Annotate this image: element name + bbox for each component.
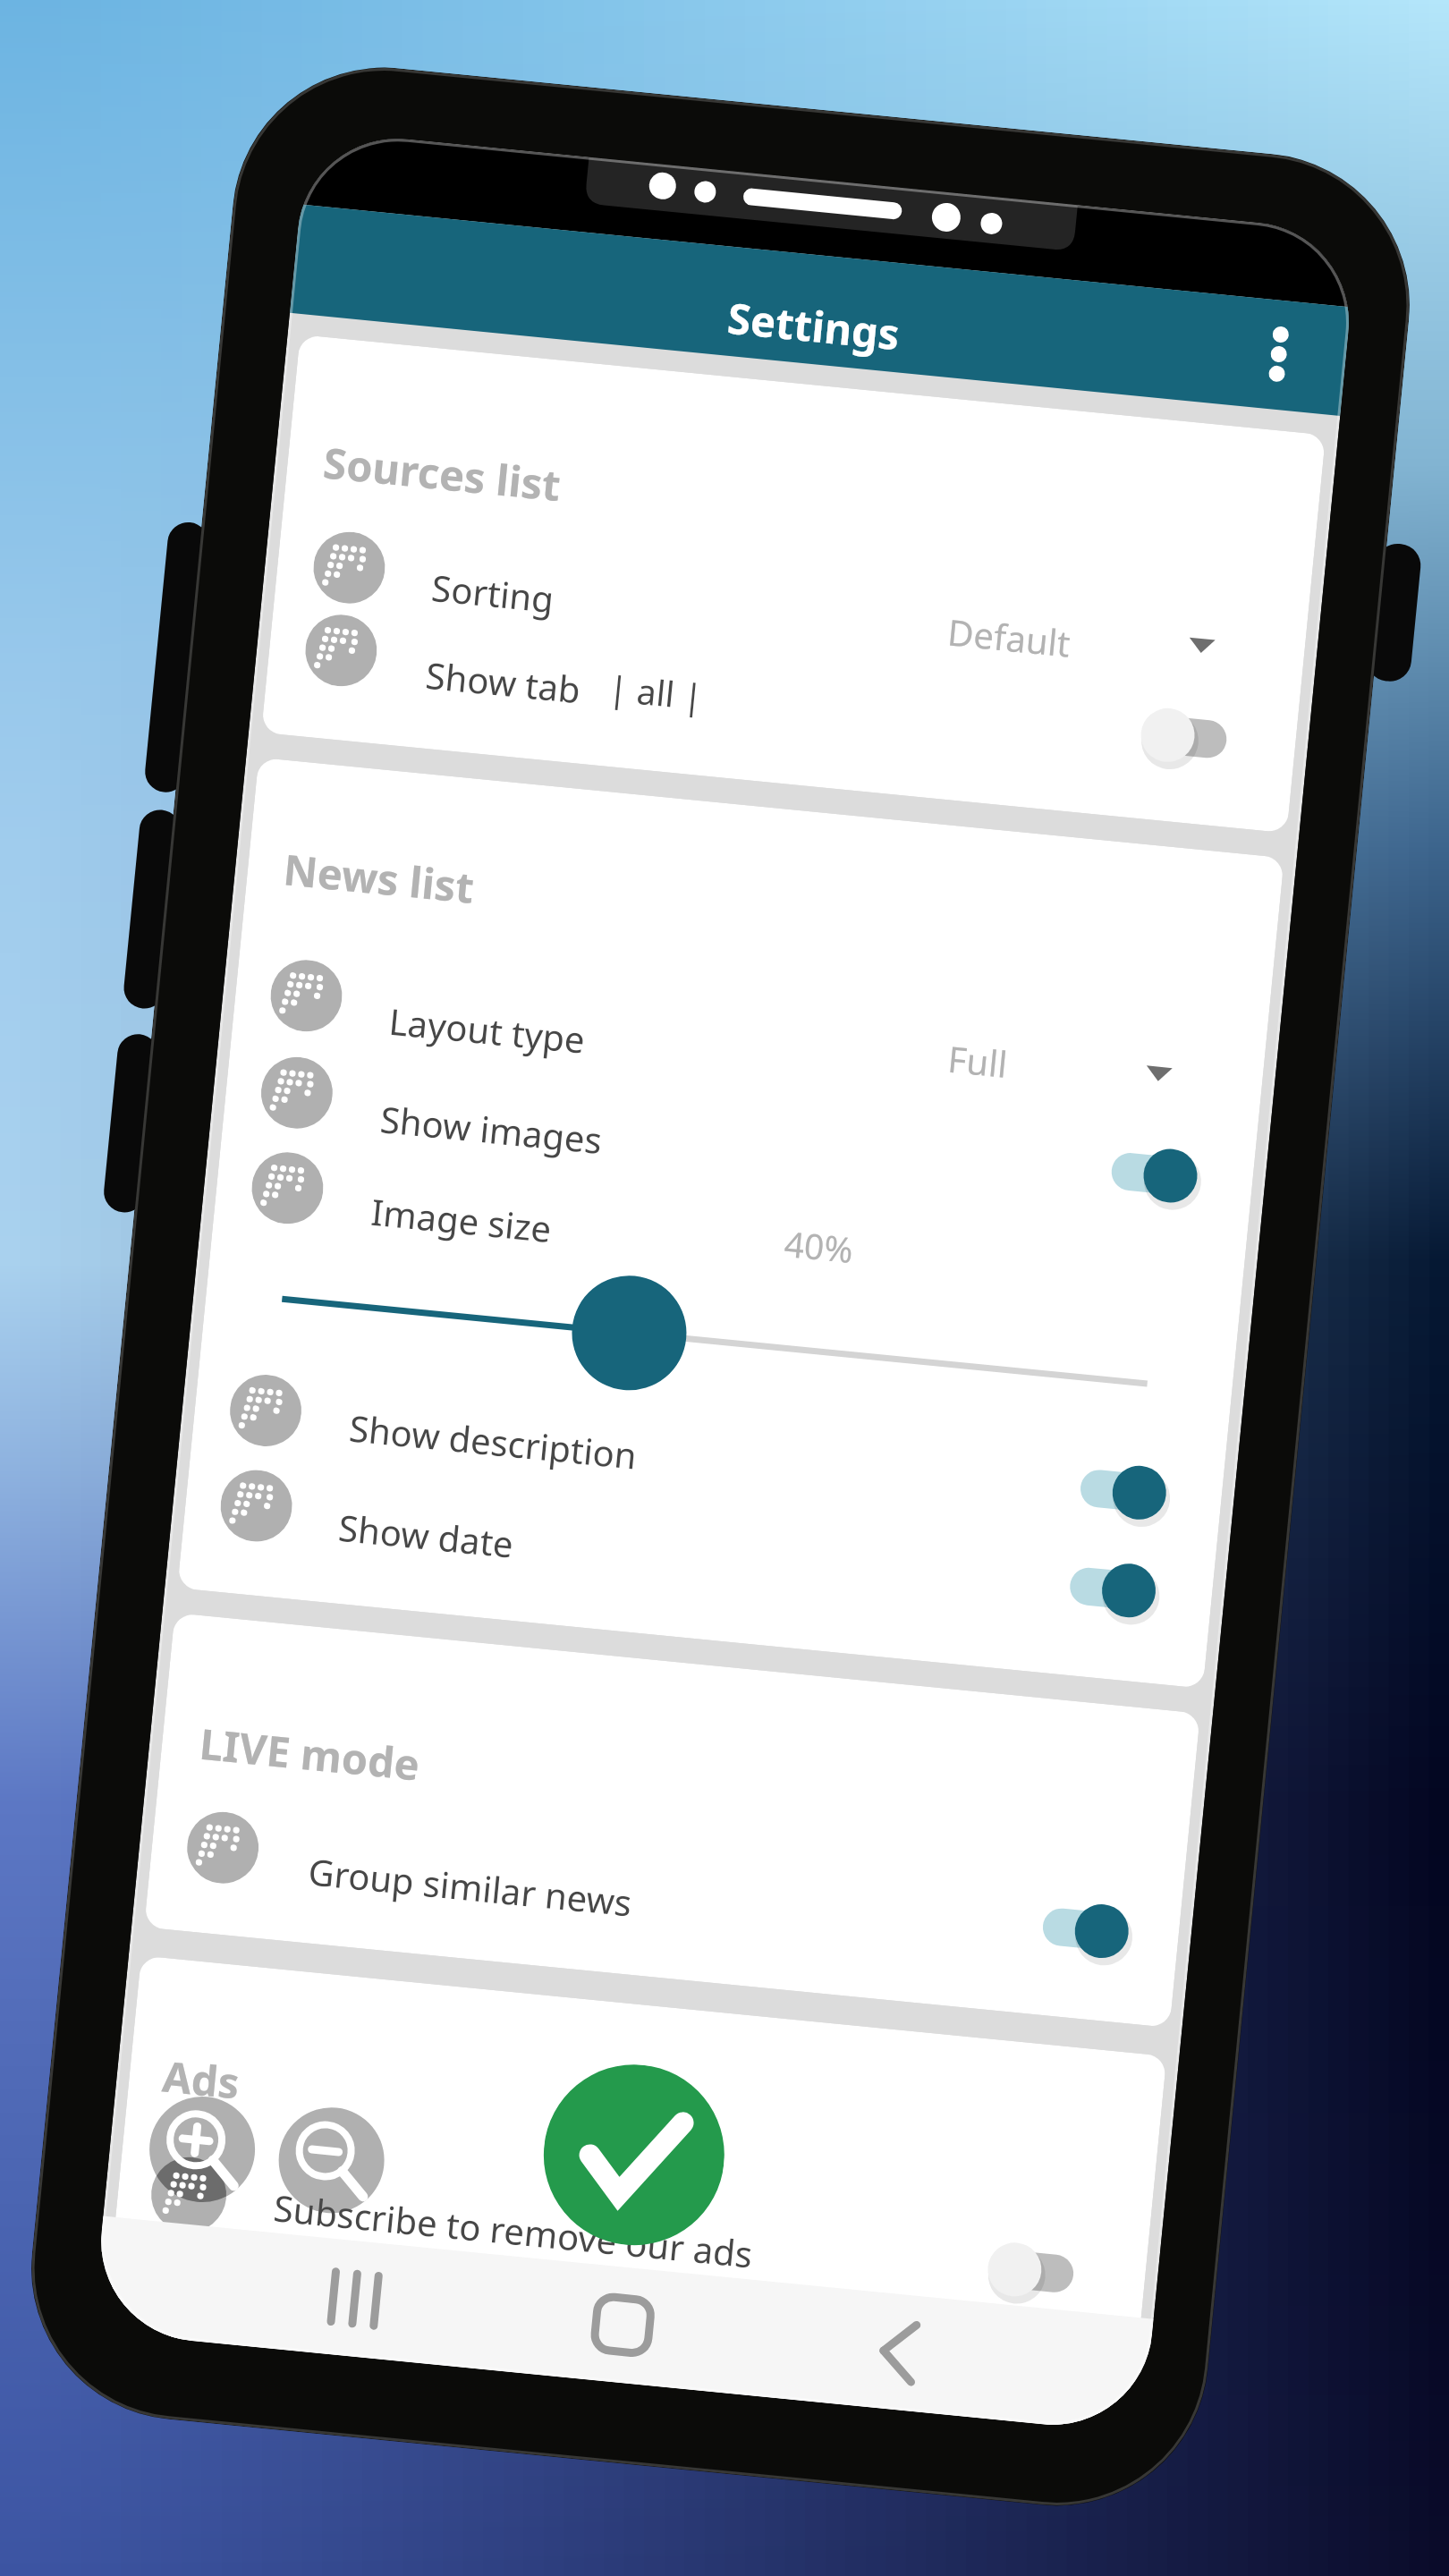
button[interactable]: Setting — [302, 611, 380, 690]
staticText: News list — [281, 840, 477, 916]
button[interactable]: Settings — [290, 204, 1351, 416]
button[interactable]: Toggle — [1017, 1874, 1183, 1988]
button[interactable]: Setting — [267, 957, 345, 1035]
staticText: Settings — [725, 289, 902, 363]
staticText: Ads — [160, 2047, 242, 2111]
button[interactable]: Setting — [227, 1371, 305, 1450]
button[interactable]: Back — [813, 2287, 984, 2417]
button[interactable]: Setting — [184, 1809, 262, 1887]
button[interactable]: Toggle — [1054, 1436, 1224, 1549]
button[interactable]: Toggle — [1085, 1119, 1255, 1233]
button[interactable]: Setting — [258, 1054, 336, 1132]
staticText: Sorting — [430, 563, 556, 623]
staticText: Full — [946, 1034, 1010, 1088]
staticText: Subscribe to remove our ads — [272, 2183, 755, 2278]
button[interactable]: More options — [1241, 306, 1317, 398]
staticText: | all | — [607, 663, 706, 720]
staticText: Layout type — [387, 996, 588, 1063]
staticText: Show description — [347, 1403, 639, 1479]
button[interactable]: Setting — [248, 1149, 327, 1227]
staticText: Show date — [336, 1502, 516, 1568]
staticText: Show images — [378, 1094, 605, 1164]
button[interactable]: Setting — [217, 1467, 295, 1545]
staticText: 40% — [782, 1219, 856, 1273]
staticText: LIVE mode — [197, 1714, 423, 1793]
staticText: Show tab — [424, 650, 583, 713]
staticText: Default — [946, 607, 1073, 667]
staticText: Group similar news — [306, 1846, 634, 1926]
staticText: Image size — [369, 1187, 554, 1252]
button[interactable]: Toggle — [1044, 1534, 1214, 1647]
button[interactable]: Setting — [310, 529, 388, 607]
button[interactable]: Toggle — [930, 2213, 1100, 2326]
button[interactable]: Confirm — [535, 2056, 733, 2254]
button[interactable]: Toggle — [1083, 678, 1253, 792]
button[interactable]: Expand — [1175, 624, 1229, 668]
button[interactable]: Recent apps — [269, 2233, 441, 2364]
staticText: Sources list — [321, 433, 564, 514]
button[interactable]: Home — [537, 2260, 708, 2390]
button[interactable]: Ads options — [130, 2086, 431, 2283]
button[interactable]: Expand — [1132, 1052, 1186, 1096]
